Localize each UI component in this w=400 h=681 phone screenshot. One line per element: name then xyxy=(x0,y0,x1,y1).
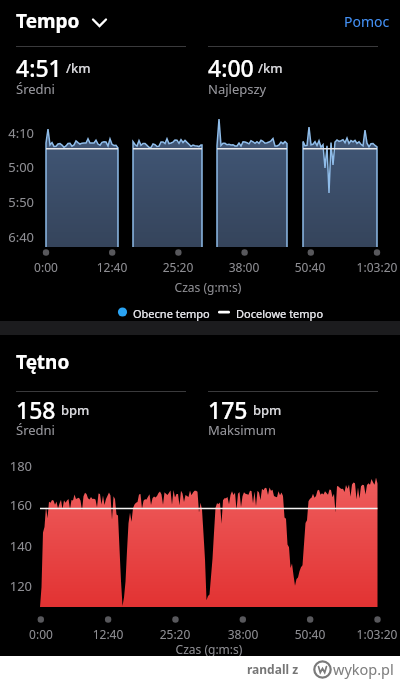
staticText: Najlepszy xyxy=(208,80,267,98)
staticText: bpm xyxy=(61,401,90,419)
staticText: 4:10 xyxy=(0,124,34,142)
staticText: 5:50 xyxy=(0,193,34,211)
staticText: Średni xyxy=(16,80,55,98)
button[interactable]: Tempo xyxy=(16,8,107,34)
staticText: 6:40 xyxy=(0,228,34,246)
staticText: 38:00 xyxy=(203,626,283,642)
staticText: Maksimum xyxy=(208,421,276,439)
staticText: Tempo xyxy=(16,8,80,34)
staticText: 1:03:20 xyxy=(337,626,400,642)
staticText: Średni xyxy=(16,421,55,439)
staticText: /km xyxy=(66,59,91,77)
staticText: 175 xyxy=(208,394,248,425)
staticText: Czas (g:m:s) xyxy=(128,279,288,295)
staticText: Obecne tempo xyxy=(133,306,210,321)
staticText: 0:00 xyxy=(6,259,86,275)
button[interactable]: Pomoc xyxy=(340,8,394,35)
staticText: bpm xyxy=(253,401,282,419)
staticText: 0:00 xyxy=(1,626,81,642)
staticText: 4:51 xyxy=(16,52,62,83)
staticText: Tętno xyxy=(16,349,70,375)
staticText: 12:40 xyxy=(68,626,148,642)
staticText: 180 xyxy=(0,457,32,475)
staticText: 120 xyxy=(0,577,32,595)
staticText: 12:40 xyxy=(72,259,152,275)
staticText: 158 xyxy=(16,394,56,425)
staticText: 140 xyxy=(0,537,32,555)
staticText: 5:00 xyxy=(0,158,34,176)
staticText: 50:40 xyxy=(270,259,350,275)
staticText: 25:20 xyxy=(135,626,215,642)
staticText: 25:20 xyxy=(138,259,218,275)
staticText: 160 xyxy=(0,496,32,514)
staticText: Czas (g:m:s) xyxy=(129,641,289,657)
staticText: Pomoc xyxy=(344,12,390,31)
staticText: Docelowe tempo xyxy=(236,306,324,321)
staticText: 50:40 xyxy=(270,626,350,642)
staticText: 1:03:20 xyxy=(337,259,400,275)
staticText: randall z xyxy=(247,661,299,677)
staticText: 4:00 xyxy=(208,52,254,83)
staticText: wykop.pl xyxy=(333,659,394,679)
staticText: /km xyxy=(258,59,283,77)
staticText: 38:00 xyxy=(204,259,284,275)
